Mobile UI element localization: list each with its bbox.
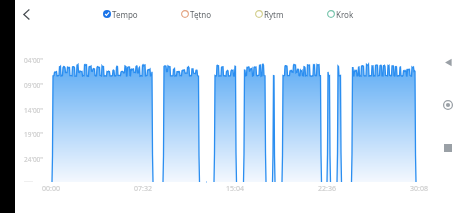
staticText: 15:04: [226, 184, 244, 194]
staticText: Tętno: [190, 9, 212, 20]
staticText: 04'00": [24, 56, 43, 65]
button[interactable]: Krok: [327, 4, 354, 24]
staticText: Tempo: [112, 9, 138, 20]
staticText: 07:32: [134, 184, 152, 194]
staticText: 09'00": [24, 81, 43, 90]
staticText: 22:36: [318, 184, 336, 194]
staticText: 14'00": [24, 106, 43, 115]
button[interactable]: Home: [438, 95, 458, 115]
staticText: 30:08: [410, 184, 428, 194]
button[interactable]: Tętno: [181, 4, 212, 24]
button[interactable]: Back: [16, 4, 37, 25]
button[interactable]: Recent apps: [438, 138, 458, 158]
staticText: 24'00": [24, 155, 43, 164]
staticText: 19'00": [24, 130, 43, 139]
staticText: Rytm: [264, 9, 284, 20]
button[interactable]: Back: [438, 52, 458, 72]
staticText: 00:00: [42, 184, 60, 194]
button[interactable]: Rytm: [255, 4, 284, 24]
staticText: Krok: [336, 9, 354, 20]
button[interactable]: Tempo: [103, 4, 138, 24]
